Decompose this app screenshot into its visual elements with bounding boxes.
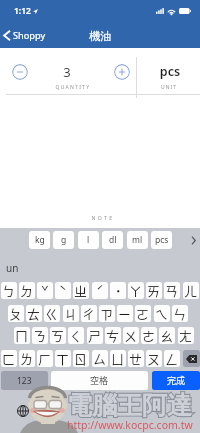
staticText: 123 (17, 375, 32, 387)
button[interactable]: ㄚ (128, 282, 144, 299)
button[interactable]: ㄒ (55, 350, 71, 367)
staticText: ㄖ (74, 350, 88, 366)
staticText: ㄝ (129, 350, 143, 366)
staticText: dl (109, 234, 117, 246)
button[interactable]: g (53, 231, 74, 249)
staticText: 電腦王阿達 (67, 390, 192, 421)
staticText: ㄟ (155, 305, 169, 321)
staticText: ㄛ (136, 305, 150, 321)
button[interactable]: ml (127, 231, 148, 249)
button[interactable]: ˊ (92, 282, 108, 299)
staticText: ㄣ (173, 305, 187, 321)
button[interactable]: ㄖ (73, 350, 89, 367)
staticText: kg (35, 234, 45, 246)
staticText: ㄡ (147, 350, 161, 366)
staticText: ㄐ (64, 305, 78, 321)
staticText: ㄔ (82, 305, 96, 321)
staticText: ㄜ (142, 327, 156, 343)
button[interactable]: ㄍ (44, 305, 60, 322)
button[interactable]: ㄣ (172, 305, 188, 322)
button[interactable]: ㄉ (19, 282, 35, 299)
button[interactable]: ㄓ (73, 282, 89, 299)
staticText: ㄉ (20, 282, 34, 298)
button[interactable]: Switch keyboard (14, 402, 32, 420)
button[interactable]: ˋ (55, 282, 71, 299)
staticText: ㄋ (33, 327, 47, 343)
button[interactable]: ㄘ (105, 327, 121, 344)
button[interactable]: ㄡ (146, 350, 162, 367)
button[interactable]: l (78, 231, 99, 249)
button[interactable]: ㄆ (8, 305, 24, 322)
staticText: QUANTITY (13, 84, 133, 91)
staticText: ㄥ (165, 350, 179, 366)
button[interactable]: ㄤ (178, 327, 194, 344)
button[interactable]: Shoppy (3, 29, 46, 42)
button[interactable]: 完成 (152, 371, 200, 390)
staticText: 機油 (89, 29, 112, 43)
staticText: ㄙ (93, 350, 107, 366)
staticText: ˙ (115, 282, 122, 298)
staticText: ㄅ (2, 282, 16, 298)
staticText: 電腦王阿達 (67, 390, 192, 421)
button[interactable]: ㄈ (1, 350, 17, 367)
button[interactable]: ㄎ (50, 327, 66, 344)
button[interactable]: Increase quantity (114, 64, 130, 80)
button[interactable]: ㄙ (92, 350, 108, 367)
staticText: ㄦ (184, 282, 198, 298)
staticText: ㄓ (74, 282, 88, 298)
staticText: ㄈ (2, 350, 16, 366)
button[interactable]: ㄥ (164, 350, 180, 367)
staticText: ㄠ (160, 327, 174, 343)
staticText: pcs (110, 63, 200, 80)
button[interactable]: ㄝ (128, 350, 144, 367)
staticText: ㄤ (179, 327, 193, 343)
button[interactable]: 123 (1, 371, 48, 390)
staticText: un (6, 261, 19, 275)
button[interactable]: ㄋ (32, 327, 48, 344)
staticText: http://www.kocpc.com.tw (67, 418, 193, 432)
button[interactable]: ㄩ (110, 350, 126, 367)
staticText: 3 (7, 63, 127, 81)
button[interactable]: ㄔ (81, 305, 97, 322)
button[interactable]: pcs (151, 231, 172, 249)
button[interactable]: More (186, 231, 200, 249)
button[interactable]: ㄌ (19, 350, 35, 367)
button[interactable]: ㄧ (117, 305, 133, 322)
button[interactable]: ㄐ (63, 305, 79, 322)
staticText: ㄇ (15, 327, 29, 343)
button[interactable]: ㄊ (26, 305, 42, 322)
button[interactable]: ㄏ (37, 350, 53, 367)
button[interactable]: ㄢ (164, 282, 180, 299)
button[interactable]: Dictation (169, 402, 187, 420)
staticText: Shoppy (13, 29, 46, 42)
button[interactable]: ㄜ (141, 327, 157, 344)
button[interactable]: ㄦ (183, 282, 199, 299)
button[interactable]: ㄇ (14, 327, 30, 344)
button[interactable]: kg (29, 231, 50, 249)
button[interactable]: ㄟ (154, 305, 170, 322)
staticText: ㄚ (129, 282, 143, 298)
staticText: ㄩ (111, 350, 125, 366)
button[interactable]: ㄞ (146, 282, 162, 299)
staticText: ㄨ (124, 327, 138, 343)
button[interactable]: ㄨ (123, 327, 139, 344)
button[interactable]: ˇ (37, 282, 53, 299)
staticText: 空格 (90, 374, 109, 387)
button[interactable]: ㄑ (68, 327, 84, 344)
button[interactable]: Delete (183, 350, 200, 367)
button[interactable]: ㄕ (87, 327, 103, 344)
staticText: ㄌ (20, 350, 34, 366)
button[interactable]: ㄠ (159, 327, 175, 344)
staticText: ㄕ (88, 327, 102, 343)
staticText: ㄑ (69, 327, 83, 343)
button[interactable]: ㄛ (135, 305, 151, 322)
button[interactable]: ˙ (110, 282, 126, 299)
staticText: ㄏ (38, 350, 52, 366)
staticText: NOTE (43, 214, 163, 221)
button[interactable]: 空格 (51, 371, 148, 390)
button[interactable]: ㄅ (1, 282, 17, 299)
button[interactable]: ㄗ (99, 305, 115, 322)
button[interactable]: dl (102, 231, 123, 249)
button[interactable]: Decrease quantity (12, 64, 28, 80)
staticText: pcs (155, 234, 169, 246)
